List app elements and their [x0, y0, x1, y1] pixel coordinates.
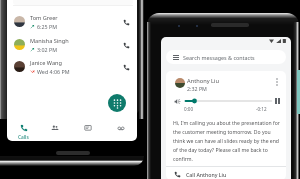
button[interactable]: Manisha Singh — [7, 33, 137, 56]
staticText: 2:32 PM — [187, 85, 207, 92]
button[interactable]: Dial pad — [108, 94, 126, 112]
staticText: Search messages & contacts — [183, 54, 255, 61]
staticText: Tom Greer — [30, 14, 58, 22]
button[interactable]: Call Janice Wang — [117, 58, 135, 76]
button[interactable]: Voicemail — [104, 121, 137, 141]
staticText: 6:25 PM — [37, 23, 58, 30]
staticText: Calls — [18, 134, 29, 141]
button[interactable]: Calls — [7, 121, 39, 141]
button[interactable]: Contacts — [39, 121, 71, 141]
button[interactable]: Call Anthony Liu — [166, 167, 286, 179]
staticText: Anthony Liu — [187, 77, 220, 85]
button[interactable]: Tom Greer — [7, 10, 137, 33]
button[interactable]: Search messages & contacts — [166, 50, 286, 64]
staticText: 0:00 — [184, 106, 194, 112]
staticText: 3:02 PM — [37, 46, 58, 53]
button[interactable]: Pause — [273, 96, 282, 105]
staticText: -0:12 — [256, 106, 267, 112]
staticText: Janice Wang — [30, 59, 62, 67]
button[interactable]: Call Manisha Singh — [117, 36, 135, 54]
button[interactable]: Messages — [71, 121, 104, 141]
button[interactable]: Janice Wang — [7, 55, 137, 78]
staticText: Call Anthony Liu — [186, 171, 227, 178]
staticText: Manisha Singh — [30, 37, 69, 45]
button[interactable]: More options — [271, 76, 283, 88]
staticText: Wed 4:06 PM — [37, 68, 70, 75]
staticText: Hi, I'm calling you about the presentati… — [173, 120, 285, 162]
button[interactable]: Call Tom Greer — [117, 13, 135, 31]
